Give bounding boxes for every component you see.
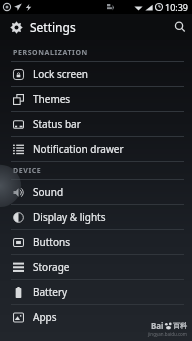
staticText: 百科 [173, 321, 187, 330]
staticText: DEVICE [13, 166, 42, 176]
button[interactable]: Buttons [0, 230, 192, 254]
button[interactable]: Apps [0, 305, 192, 329]
staticText: Status bar [33, 117, 81, 131]
button[interactable]: Sound [0, 180, 192, 204]
button[interactable]: Notification drawer [0, 137, 192, 161]
button[interactable]: Themes [0, 87, 192, 111]
staticText: Sound [33, 185, 64, 199]
staticText: Battery [33, 285, 68, 299]
button[interactable]: Battery [0, 280, 192, 304]
staticText: 10:39 [165, 1, 189, 13]
staticText: Bai [151, 320, 164, 331]
staticText: PERSONALIZATION [13, 48, 88, 58]
button[interactable]: Search [168, 15, 192, 39]
button[interactable]: Display & lights [0, 205, 192, 229]
staticText: Buttons [33, 235, 70, 249]
staticText: jingyan.baidu.com [148, 331, 187, 337]
button[interactable]: Status bar [0, 112, 192, 136]
staticText: Storage [33, 260, 70, 274]
staticText: Themes [33, 92, 71, 106]
staticText: Notification drawer [33, 142, 124, 156]
staticText: Settings [30, 19, 76, 35]
staticText: Apps [33, 310, 57, 324]
staticText: Display & lights [33, 210, 106, 224]
button[interactable]: Lock screen [0, 62, 192, 86]
staticText: Lock screen [33, 67, 89, 81]
button[interactable]: Storage [0, 255, 192, 279]
